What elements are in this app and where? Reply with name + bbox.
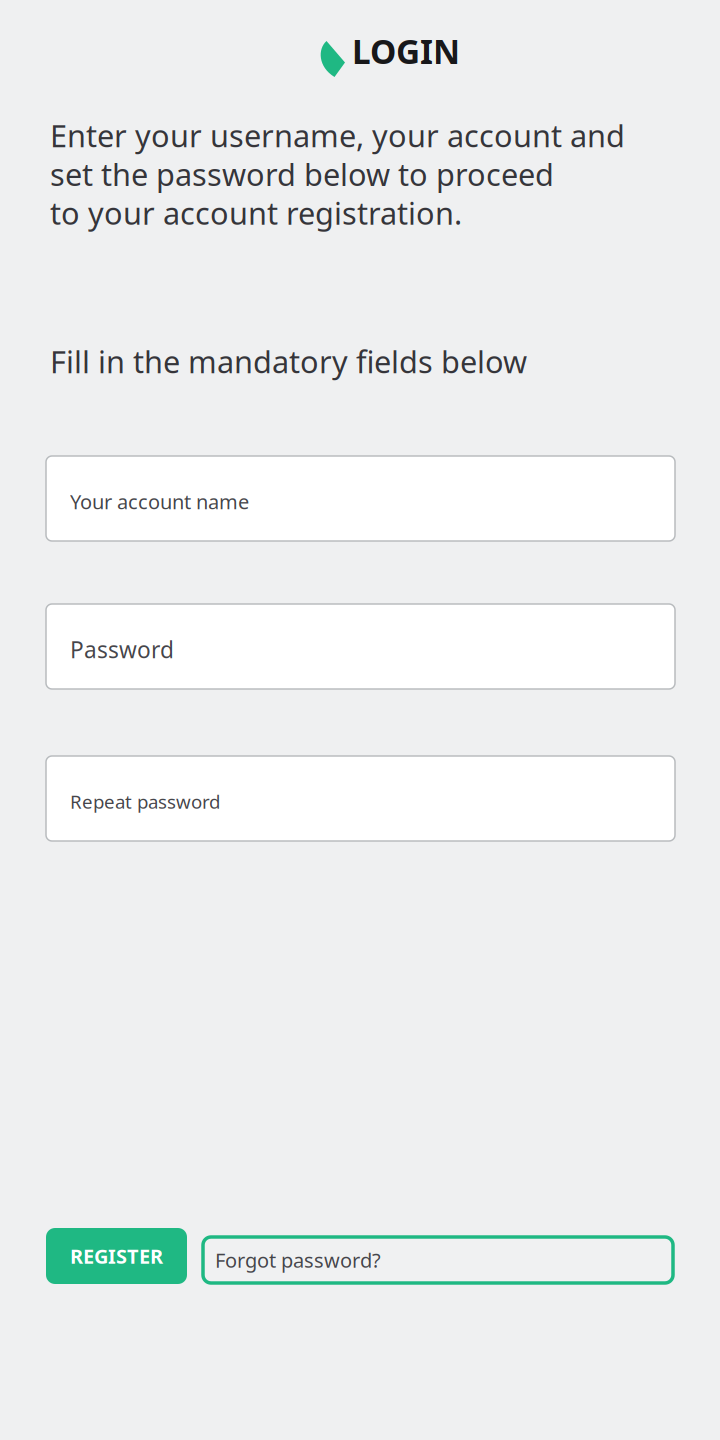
staticText: LOGIN xyxy=(352,29,460,73)
staticText: Repeat password xyxy=(70,789,220,814)
staticText: REGISTER xyxy=(70,1243,163,1269)
button[interactable]: Forgot password? xyxy=(203,1237,673,1283)
staticText: Password xyxy=(70,634,174,664)
staticText: Your account name xyxy=(70,488,249,515)
button[interactable]: Repeat password xyxy=(46,756,675,841)
button[interactable]: REGISTER xyxy=(46,1228,187,1284)
staticText: Forgot password? xyxy=(215,1247,381,1273)
staticText: Enter your username, your account and xyxy=(50,115,625,156)
button[interactable]: Password xyxy=(46,604,675,689)
button[interactable]: Your account name xyxy=(46,456,675,541)
staticText: to your account registration. xyxy=(50,192,462,233)
staticText: Fill in the mandatory fields below xyxy=(50,341,527,382)
staticText: set the password below to proceed xyxy=(50,154,554,194)
